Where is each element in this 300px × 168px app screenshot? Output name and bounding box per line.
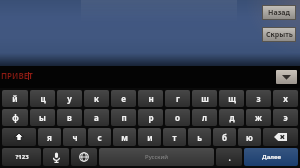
button[interactable]: ж — [246, 109, 271, 126]
staticText: н — [148, 93, 154, 104]
button[interactable]: э — [273, 109, 298, 126]
button[interactable]: б — [213, 128, 236, 146]
button[interactable]: й — [2, 90, 28, 107]
button[interactable]: м — [113, 128, 136, 146]
button[interactable]: к — [84, 90, 109, 107]
staticText: Назад — [268, 8, 290, 18]
button[interactable]: Далее — [244, 148, 298, 166]
staticText: я — [47, 132, 52, 143]
button[interactable]: Voice input — [43, 148, 69, 166]
staticText: ш — [201, 93, 209, 104]
button[interactable]: з — [246, 90, 271, 107]
staticText: ПРИВЕТ — [1, 70, 33, 81]
button[interactable]: е — [111, 90, 136, 107]
staticText: ?123 — [15, 153, 29, 161]
staticText: щ — [228, 93, 236, 104]
button[interactable]: р — [138, 109, 163, 126]
staticText: х — [283, 93, 288, 104]
button[interactable]: ?123 — [2, 148, 41, 166]
staticText: з — [256, 93, 261, 104]
staticText: ф — [12, 112, 19, 123]
button[interactable]: и — [138, 128, 161, 146]
button[interactable]: т — [163, 128, 186, 146]
button[interactable]: . — [216, 148, 242, 166]
staticText: э — [283, 112, 288, 123]
button[interactable]: ю — [238, 128, 261, 146]
staticText: р — [148, 112, 154, 123]
button[interactable]: Русский — [99, 148, 214, 166]
button[interactable]: Hide keyboard — [276, 70, 297, 84]
button[interactable]: н — [138, 90, 163, 107]
button[interactable]: л — [192, 109, 217, 126]
button[interactable]: г — [165, 90, 190, 107]
button[interactable]: а — [84, 109, 109, 126]
button[interactable]: в — [57, 109, 82, 126]
staticText: ю — [246, 132, 253, 143]
button[interactable]: ш — [192, 90, 217, 107]
button[interactable]: ф — [2, 109, 28, 126]
staticText: в — [67, 112, 72, 123]
staticText: . — [228, 152, 231, 163]
staticText: л — [202, 112, 207, 123]
button[interactable]: х — [273, 90, 298, 107]
staticText: м — [121, 132, 128, 143]
button[interactable]: Скрыть — [263, 28, 295, 41]
button[interactable]: о — [165, 109, 190, 126]
button[interactable]: Назад — [263, 6, 295, 19]
staticText: й — [12, 93, 18, 104]
staticText: у — [67, 93, 72, 104]
button[interactable]: Change language — [71, 148, 97, 166]
button[interactable]: я — [38, 128, 61, 146]
staticText: ч — [72, 132, 78, 143]
button[interactable]: п — [111, 109, 136, 126]
staticText: и — [147, 132, 153, 143]
button[interactable]: ч — [63, 128, 86, 146]
button[interactable]: у — [57, 90, 82, 107]
staticText: Далее — [262, 153, 281, 161]
staticText: т — [172, 132, 177, 143]
staticText: б — [222, 132, 227, 143]
button[interactable]: с — [88, 128, 111, 146]
staticText: ц — [40, 93, 46, 104]
staticText: к — [94, 93, 99, 104]
button[interactable]: Shift — [2, 128, 36, 146]
button[interactable]: ь — [188, 128, 211, 146]
staticText: ж — [255, 112, 262, 123]
staticText: д — [229, 112, 235, 123]
button[interactable]: Backspace — [263, 128, 298, 146]
button[interactable]: щ — [219, 90, 244, 107]
button[interactable]: ы — [30, 109, 55, 126]
button[interactable]: д — [219, 109, 244, 126]
staticText: ь — [197, 132, 202, 143]
staticText: е — [121, 93, 126, 104]
staticText: а — [94, 112, 99, 123]
staticText: п — [121, 112, 127, 123]
staticText: г — [176, 93, 180, 104]
staticText: с — [97, 132, 102, 143]
staticText: ы — [39, 112, 46, 123]
staticText: о — [175, 112, 180, 123]
staticText: Русский — [145, 153, 168, 161]
button[interactable]: ц — [30, 90, 55, 107]
staticText: Скрыть — [266, 30, 293, 40]
